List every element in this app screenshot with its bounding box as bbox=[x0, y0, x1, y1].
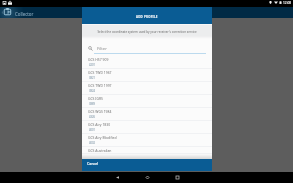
button[interactable]: GCS TWD 1997 bbox=[82, 82, 212, 95]
staticText: 4002 bbox=[89, 141, 95, 145]
staticText: GCS Australian bbox=[88, 148, 112, 153]
button[interactable]: GCS TWD 1967 bbox=[82, 69, 212, 82]
staticText: GCS Airy 1830 bbox=[88, 122, 111, 127]
staticText: GCS WGS 1984 bbox=[88, 109, 112, 114]
staticText: 12:08 bbox=[283, 1, 292, 5]
button[interactable]: GCS Australian bbox=[82, 147, 212, 154]
button[interactable]: Recent apps bbox=[165, 172, 189, 183]
staticText: 3889 bbox=[89, 102, 95, 106]
button[interactable]: Cancel bbox=[82, 159, 212, 171]
button[interactable]: GCS WGS 1984 bbox=[82, 108, 212, 121]
button[interactable]: GCS Airy Modified bbox=[82, 134, 212, 147]
button[interactable]: GCS Airy 1830 bbox=[82, 121, 212, 134]
button[interactable]: Home bbox=[135, 172, 159, 183]
staticText: 4326 bbox=[89, 115, 95, 119]
staticText: GCS Airy Modified bbox=[88, 135, 117, 140]
staticText: 4001 bbox=[89, 128, 95, 132]
staticText: GCS IGRS bbox=[88, 96, 103, 101]
staticText: Select the coordinate system used by you… bbox=[97, 30, 197, 34]
staticText: Filter bbox=[97, 46, 107, 52]
staticText: 3824 bbox=[89, 89, 95, 93]
staticText: ADD PROFILE bbox=[136, 15, 158, 19]
button[interactable]: GCS HS7 909 bbox=[82, 56, 212, 69]
staticText: GCS TWD 1997 bbox=[88, 83, 112, 88]
staticText: Collector bbox=[15, 11, 34, 17]
button[interactable]: Back bbox=[105, 172, 129, 183]
staticText: 3821 bbox=[89, 76, 95, 80]
staticText: Cancel bbox=[87, 161, 99, 166]
staticText: GCS HS7 909 bbox=[88, 57, 109, 62]
staticText: GCS TWD 1967 bbox=[88, 70, 112, 75]
staticText: 4201 bbox=[89, 63, 95, 67]
button[interactable]: GCS IGRS bbox=[82, 95, 212, 108]
